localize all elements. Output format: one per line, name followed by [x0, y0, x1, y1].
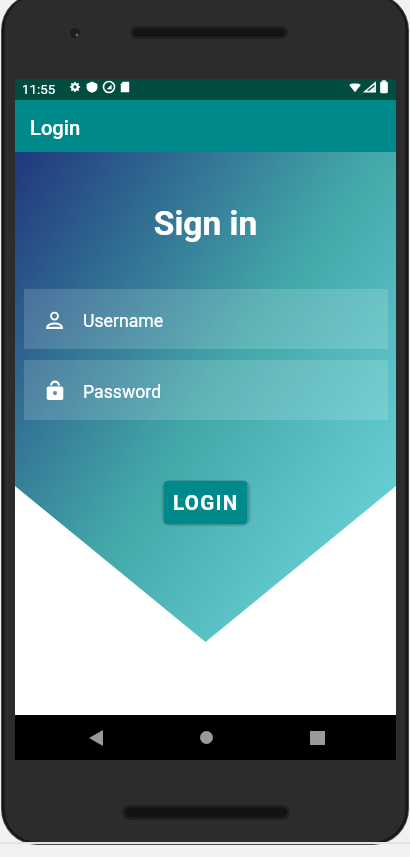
button[interactable]: Login: [15, 100, 396, 152]
button[interactable]: Home: [185, 715, 227, 760]
staticText: Username: [83, 311, 164, 332]
staticText: 11:55: [22, 82, 56, 98]
button[interactable]: Username: [24, 289, 388, 349]
button[interactable]: Back: [75, 715, 117, 760]
staticText: Sign in: [15, 204, 396, 243]
button[interactable]: LOGIN: [164, 481, 247, 524]
staticText: Password: [83, 382, 162, 403]
button[interactable]: Recent apps: [296, 715, 338, 760]
staticText: Login: [30, 116, 81, 140]
staticText: LOGIN: [173, 491, 239, 515]
button[interactable]: Password: [24, 360, 388, 420]
